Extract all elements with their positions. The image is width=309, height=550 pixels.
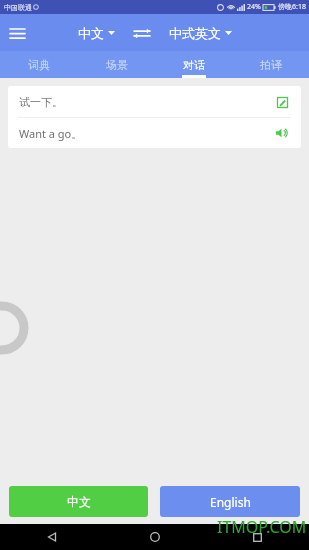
staticText: 词典 xyxy=(28,58,50,72)
button[interactable]: Want a go。 xyxy=(8,118,301,148)
button[interactable]: 试一下。 xyxy=(8,86,301,117)
staticText: 拍译 xyxy=(260,58,282,72)
staticText: 对话 xyxy=(183,58,205,72)
button[interactable]: 词典 xyxy=(0,51,78,78)
button[interactable]: Play audio xyxy=(274,125,290,141)
staticText: 24% xyxy=(247,2,261,12)
staticText: 试一下。 xyxy=(19,95,274,109)
button[interactable]: 拍译 xyxy=(232,51,309,78)
button[interactable]: 对话 xyxy=(155,51,232,78)
button[interactable]: English xyxy=(160,486,300,517)
button[interactable]: Edit xyxy=(274,94,290,110)
button[interactable]: 中文 xyxy=(9,486,148,517)
staticText: ITMOP.COM xyxy=(217,516,307,538)
staticText: 场景 xyxy=(106,58,128,72)
button[interactable]: 中文 xyxy=(74,21,119,45)
button[interactable]: Menu xyxy=(0,16,34,50)
staticText: 中式英文 xyxy=(169,25,221,41)
staticText: 中文 xyxy=(67,494,91,509)
staticText: 中国联通 xyxy=(4,3,32,12)
button[interactable]: Home xyxy=(103,524,206,550)
button[interactable]: 场景 xyxy=(78,51,155,78)
button[interactable]: Recent apps xyxy=(206,524,309,550)
button[interactable]: Back xyxy=(0,524,103,550)
staticText: 中文 xyxy=(78,25,104,41)
staticText: 傍晚6:18 xyxy=(278,2,306,12)
button[interactable]: 中式英文 xyxy=(165,21,236,45)
staticText: English xyxy=(210,494,251,510)
button[interactable]: Swap languages xyxy=(131,22,153,44)
staticText: Want a go。 xyxy=(19,126,274,141)
